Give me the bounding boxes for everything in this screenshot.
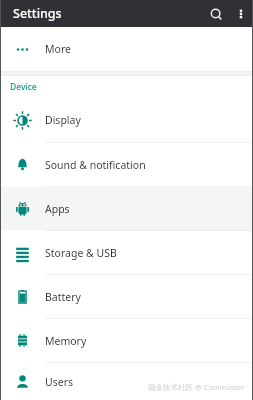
button[interactable]: Users xyxy=(0,363,253,400)
button[interactable]: Battery xyxy=(0,275,253,318)
staticText: Battery xyxy=(45,290,81,304)
staticText: Settings xyxy=(13,5,62,22)
button[interactable]: Display xyxy=(0,98,253,142)
staticText: Storage & USB xyxy=(45,246,117,260)
button[interactable]: Sound & notification xyxy=(0,143,253,186)
staticText: Apps xyxy=(45,202,70,216)
button[interactable]: Apps xyxy=(0,187,253,230)
staticText: Memory xyxy=(45,334,87,348)
staticText: Sound & notification xyxy=(45,158,146,172)
button[interactable]: Memory xyxy=(0,319,253,362)
button[interactable]: Storage & USB xyxy=(0,231,253,274)
staticText: More xyxy=(45,42,71,56)
button[interactable]: More xyxy=(0,27,253,71)
staticText: 掘金技术社区 @ Coolmuster xyxy=(148,382,245,392)
staticText: Users xyxy=(45,375,73,389)
staticText: Display xyxy=(45,113,81,127)
button[interactable]: Search xyxy=(203,1,229,27)
button[interactable]: More options xyxy=(229,2,253,26)
staticText: Device xyxy=(10,81,37,93)
